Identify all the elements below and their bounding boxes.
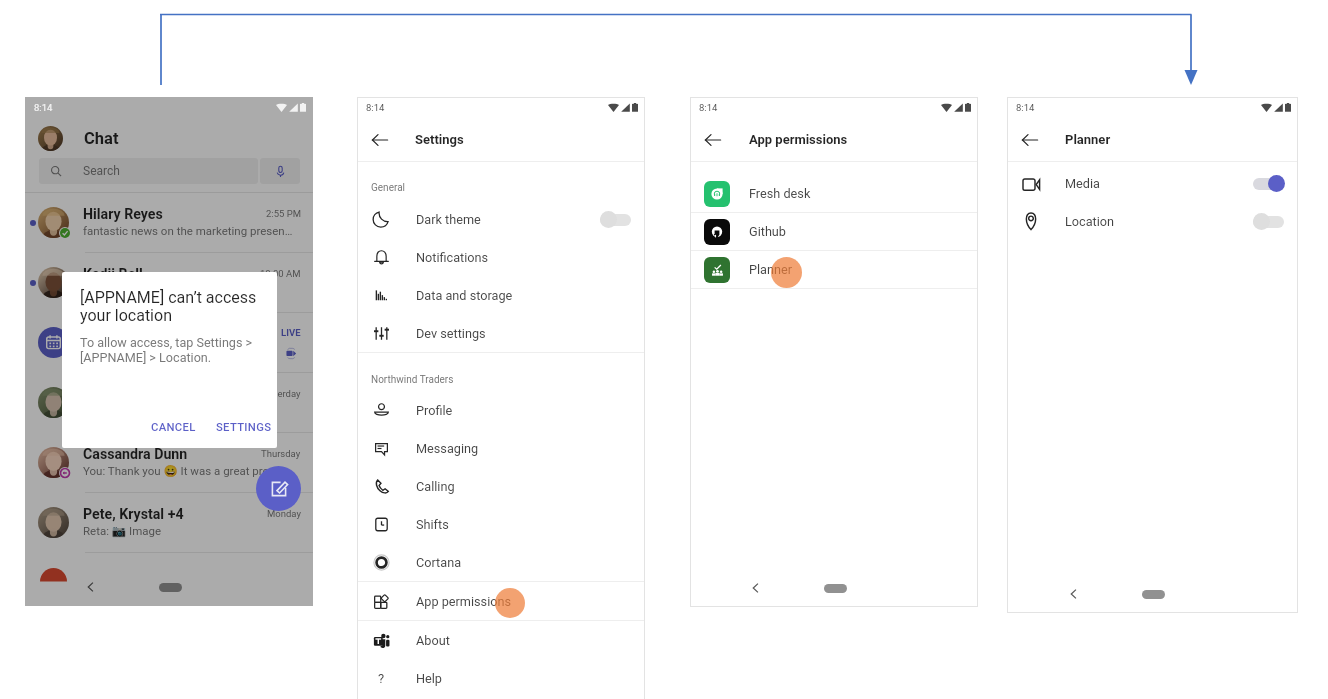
button[interactable]: Shifts <box>357 505 645 543</box>
button[interactable] <box>25 553 313 573</box>
button[interactable]: About <box>357 621 645 659</box>
button[interactable]: Planner <box>690 251 978 288</box>
staticText: Cassandra Dunn <box>83 446 188 463</box>
staticText: Chat <box>84 129 119 148</box>
staticText: Thursday <box>261 448 301 459</box>
staticText: Dev settings <box>416 326 486 341</box>
button[interactable]: Back <box>87 582 94 592</box>
staticText: Northwind Traders <box>371 374 454 386</box>
button[interactable]: Home <box>159 583 182 592</box>
staticText: About <box>416 633 450 648</box>
button[interactable]: Dark theme <box>357 200 645 238</box>
staticText: Yesterday <box>259 388 301 399</box>
staticText: Calling <box>416 479 455 494</box>
button[interactable]: Marketing Sync <box>25 313 313 372</box>
staticText: Kadji Bell <box>83 266 143 283</box>
staticText: To allow access, tap Settings > [APPNAME… <box>80 335 263 365</box>
staticText: Media <box>1065 176 1100 191</box>
staticText: Shifts <box>416 517 449 532</box>
staticText: Messaging <box>416 441 479 456</box>
button[interactable]: Dev settings <box>357 314 645 352</box>
staticText: ? <box>378 671 385 686</box>
button[interactable]: Pete, Krystal +4 <box>25 493 313 552</box>
button[interactable]: Hilary Reyes <box>25 193 313 252</box>
staticText: Planner <box>1065 132 1111 147</box>
button[interactable]: Gerald Ramos <box>25 373 313 432</box>
button[interactable]: Back <box>370 130 390 150</box>
staticText: 8:14 <box>34 102 53 113</box>
button[interactable]: App permissions <box>357 582 645 620</box>
staticText: Settings <box>415 132 464 147</box>
staticText: You: Thank you 😀 It was a great pro… <box>83 464 277 477</box>
staticText: Dark theme <box>416 212 481 227</box>
staticText: Profile <box>416 403 453 418</box>
staticText: Notifications <box>416 250 489 265</box>
button[interactable]: Kadji Bell <box>25 253 313 312</box>
button[interactable]: Profile <box>357 391 645 429</box>
staticText: [APPNAME] can’t access your location <box>80 288 265 325</box>
staticText: Data and storage <box>416 288 513 303</box>
staticText: Hilary Reyes <box>83 206 163 223</box>
button[interactable]: ? <box>357 659 645 697</box>
button[interactable]: Messaging <box>357 429 645 467</box>
staticText: fantastic news on the marketing presen… <box>83 224 293 237</box>
staticText: 10:00 AM <box>260 268 301 279</box>
staticText: App permissions <box>749 132 848 147</box>
button[interactable]: Notifications <box>357 238 645 276</box>
staticText: Fresh desk <box>749 186 811 201</box>
button[interactable]: Back <box>752 583 759 593</box>
button[interactable]: Fresh desk <box>690 175 978 212</box>
staticText: SETTINGS <box>216 421 272 434</box>
staticText: 2:55 PM <box>266 208 301 219</box>
button[interactable]: Voice search <box>260 158 300 184</box>
button[interactable]: Back <box>1020 130 1040 150</box>
button[interactable]: Calling <box>357 467 645 505</box>
staticText: 8:14 <box>366 102 385 113</box>
button[interactable]: Home <box>1142 590 1165 599</box>
staticText: Monday <box>267 508 301 519</box>
staticText: 8:14 <box>1016 102 1035 113</box>
button[interactable]: Cortana <box>357 543 645 581</box>
staticText: Let’s sync up about the deck <box>83 284 228 297</box>
staticText: Search <box>83 164 120 178</box>
button[interactable]: Media <box>1007 164 1298 202</box>
staticText: Location <box>1065 214 1115 229</box>
staticText: Marketing Sync <box>83 326 183 343</box>
staticText: LIVE <box>281 327 301 338</box>
button[interactable]: Data and storage <box>357 276 645 314</box>
button[interactable]: Back <box>703 130 723 150</box>
button[interactable]: Search <box>39 158 258 184</box>
button[interactable]: Back <box>1070 589 1077 599</box>
staticText: Help <box>416 671 442 686</box>
button[interactable]: CANCEL <box>144 416 203 439</box>
staticText: Pete, Krystal +4 <box>83 506 184 523</box>
button[interactable]: Cassandra Dunn <box>25 433 313 492</box>
button[interactable]: Profile <box>38 126 63 151</box>
button[interactable]: New chat <box>256 466 301 511</box>
staticText: Reta: 📷 Image <box>83 524 162 537</box>
button[interactable]: SETTINGS <box>209 416 277 439</box>
staticText: 8:14 <box>699 102 718 113</box>
staticText: Planner <box>749 262 793 277</box>
staticText: Weekly stand-up <box>83 344 167 357</box>
button[interactable]: Github <box>690 213 978 250</box>
button[interactable]: Home <box>824 584 847 593</box>
staticText: Github <box>749 224 786 239</box>
staticText: General <box>371 182 406 194</box>
staticText: Cortana <box>416 555 462 570</box>
button[interactable]: Location <box>1007 202 1298 240</box>
staticText: App permissions <box>416 594 512 609</box>
staticText: CANCEL <box>151 421 196 434</box>
